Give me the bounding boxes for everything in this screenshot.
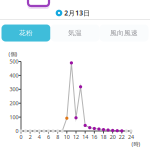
staticText: 14: [82, 133, 88, 141]
button[interactable]: 花粉: [1, 24, 50, 41]
staticText: 風向風速: [110, 29, 138, 37]
staticText: 500: [9, 58, 18, 65]
staticText: 2月13日: [64, 9, 90, 17]
staticText: 花粉: [19, 29, 33, 37]
staticText: 6: [47, 133, 50, 141]
staticText: 16: [91, 133, 97, 141]
button[interactable]: 風向風速: [99, 24, 148, 41]
staticText: 4: [38, 133, 41, 141]
staticText: 300: [9, 86, 18, 93]
staticText: 24: [128, 133, 134, 141]
staticText: 20: [110, 133, 116, 141]
staticText: 22: [119, 133, 125, 141]
staticText: 100: [9, 114, 18, 121]
staticText: 0: [19, 133, 22, 141]
button[interactable]: 気温: [50, 24, 99, 41]
staticText: 10: [64, 133, 70, 141]
staticText: 200: [9, 100, 18, 107]
staticText: 18: [100, 133, 106, 141]
staticText: 0: [15, 127, 18, 135]
staticText: (時): [131, 140, 140, 148]
staticText: 400: [9, 72, 18, 79]
staticText: 12: [73, 133, 79, 141]
staticText: 8: [56, 133, 59, 141]
staticText: 2: [29, 133, 32, 141]
staticText: 気温: [68, 29, 82, 37]
staticText: (個): [8, 50, 17, 58]
